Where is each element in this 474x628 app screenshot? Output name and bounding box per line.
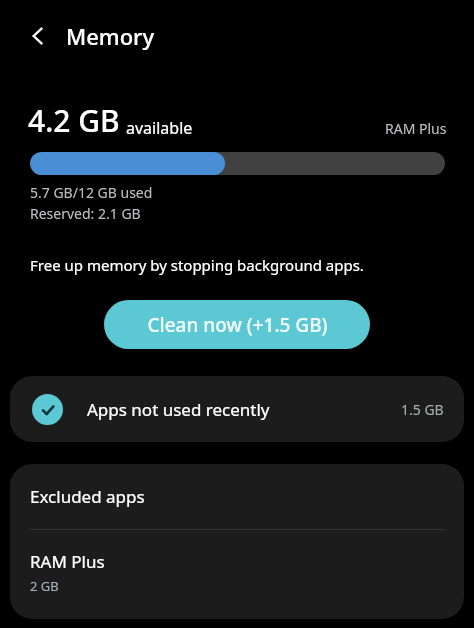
- staticText: Memory: [66, 21, 155, 51]
- staticText: Excluded apps: [30, 485, 145, 508]
- staticText: Apps not used recently: [87, 398, 270, 421]
- button[interactable]: Apps not used recently: [10, 376, 464, 442]
- staticText: 2 GB: [30, 577, 59, 595]
- staticText: available: [126, 117, 193, 139]
- staticText: Free up memory by stopping background ap…: [30, 255, 364, 275]
- button[interactable]: Excluded apps: [10, 464, 464, 529]
- button[interactable]: RAM Plus: [10, 530, 464, 619]
- staticText: RAM Plus: [385, 119, 447, 138]
- button[interactable]: Clean now (+1.5 GB): [104, 300, 370, 349]
- button[interactable]: Back: [18, 16, 58, 56]
- staticText: 1.5 GB: [401, 400, 444, 419]
- staticText: 4.2 GB: [28, 100, 120, 141]
- staticText: 5.7 GB/12 GB used: [30, 183, 153, 202]
- staticText: Reserved: 2.1 GB: [30, 204, 141, 223]
- staticText: Clean now (+1.5 GB): [147, 312, 328, 338]
- staticText: RAM Plus: [30, 550, 105, 573]
